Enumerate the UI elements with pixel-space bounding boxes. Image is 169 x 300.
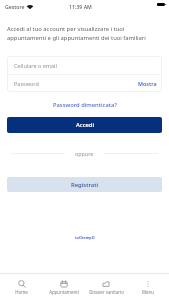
button[interactable]: Appuntamenti [43,274,85,300]
staticText: tuOtempO [75,235,95,240]
staticText: Password [14,80,39,87]
staticText: Registrati [71,181,99,189]
staticText: Password dimenticata? [53,101,117,109]
staticText: Cellulare o email [14,62,57,69]
staticText: Accedi [76,121,94,129]
button[interactable]: Dossier sanitario [85,274,127,300]
button[interactable]: Registrati [7,177,162,192]
button[interactable]: Cellulare o email [14,56,157,74]
staticText: oppure [75,150,94,157]
button[interactable]: Menu [127,274,169,300]
staticText: Appuntamenti [49,289,79,295]
staticText: Gestore [5,3,25,10]
button[interactable]: Accedi [7,117,162,133]
button[interactable]: Password dimenticata? [0,100,169,109]
staticText: Home [15,289,28,295]
staticText: Dossier sanitario [89,289,124,295]
staticText: 11:39 AM [69,3,92,10]
staticText: Mostra [138,80,157,87]
staticText: Menu [142,289,154,295]
button[interactable]: Password [14,75,157,92]
staticText: Accedi al tuo account per visualizzare i… [7,25,149,41]
button[interactable]: Home [0,274,43,300]
